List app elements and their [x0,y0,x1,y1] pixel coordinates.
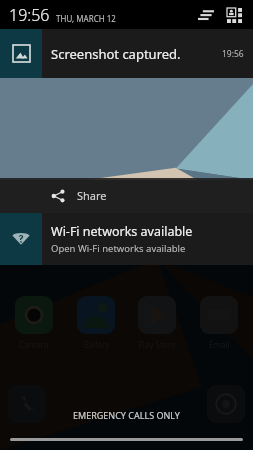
button[interactable]: Switch user [223,4,245,26]
staticText: THU, MARCH 12 [56,13,116,24]
staticText: Camera [19,339,49,350]
staticText: Email [209,339,230,350]
button[interactable]: Camera [8,296,60,350]
staticText: Play Store [138,339,176,350]
staticText: Gallery [83,339,110,350]
staticText: Open Wi-Fi networks available [51,242,186,255]
button[interactable]: Wi-Fi networks available [0,213,253,265]
button[interactable]: App [207,385,245,423]
staticText: 19:56 [222,48,244,60]
staticText: Screenshot captured. [51,45,181,63]
button[interactable]: Play Store [131,296,183,350]
button[interactable]: Email [193,296,245,350]
staticText: Wi-Fi networks available [51,223,193,240]
staticText: EMERGENCY CALLS ONLY [73,409,180,421]
staticText: 19:56 [9,4,50,26]
button[interactable]: Share [0,178,253,213]
button[interactable]: Gallery [70,296,122,350]
button[interactable]: Quick settings [195,4,217,26]
button[interactable]: Screenshot captured. [0,29,253,78]
staticText: Share [77,188,107,203]
button[interactable]: Close notification shade [10,438,243,441]
